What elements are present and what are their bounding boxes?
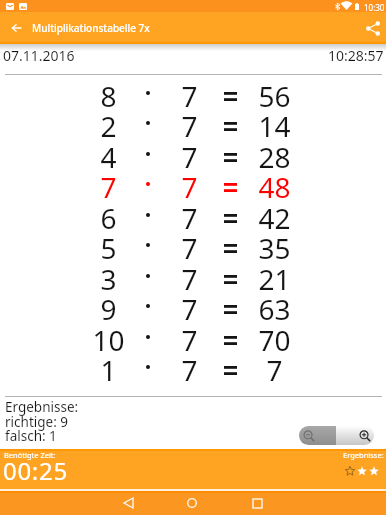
staticText: 14 [258, 107, 291, 137]
staticText: 00:25 [3, 454, 68, 487]
staticText: 35 [258, 229, 291, 259]
button[interactable]: Back [4, 16, 28, 40]
staticText: Multiplikationstabelle 7x [32, 21, 150, 35]
staticText: 6 [100, 199, 117, 229]
button[interactable]: 10 [0, 321, 386, 351]
button[interactable]: 1 [0, 351, 386, 381]
button[interactable]: Zoom out [299, 426, 336, 445]
staticText: 7 [181, 260, 198, 290]
staticText: 7 [181, 351, 198, 381]
staticText: 3 [100, 260, 117, 290]
staticText: 10:30 [364, 2, 385, 13]
staticText: Benötigte Zeit: [4, 450, 56, 460]
button[interactable]: 6 [0, 199, 386, 229]
staticText: 2 [100, 107, 117, 137]
staticText: 7 [181, 77, 198, 107]
button[interactable]: 9 [0, 290, 386, 320]
button[interactable]: Back [108, 491, 148, 515]
staticText: Ergebnisse: [343, 450, 384, 460]
staticText: 7 [181, 168, 198, 198]
staticText: 7 [181, 229, 198, 259]
staticText: 7 [181, 107, 198, 137]
staticText: 21 [258, 260, 291, 290]
staticText: 7 [181, 290, 198, 320]
staticText: 8 [100, 77, 117, 107]
button[interactable]: Recents [237, 491, 277, 515]
staticText: 7 [266, 351, 283, 381]
button[interactable]: Share [360, 15, 386, 41]
staticText: 7 [181, 199, 198, 229]
staticText: 7 [181, 321, 198, 351]
button[interactable]: 8 [0, 77, 386, 107]
staticText: 7 [181, 138, 198, 168]
staticText: 4 [100, 138, 117, 168]
staticText: 1 [100, 351, 117, 381]
staticText: 9 [100, 290, 117, 320]
staticText: Ergebnisse: [5, 398, 79, 416]
staticText: 10 [92, 321, 125, 351]
button[interactable]: 7 [0, 168, 386, 198]
staticText: falsch: 1 [5, 427, 57, 445]
staticText: 10:28:57 [328, 46, 384, 65]
staticText: 28 [258, 138, 291, 168]
staticText: 70 [258, 321, 291, 351]
button[interactable]: Zoom in [336, 426, 374, 445]
staticText: 07.11.2016 [3, 46, 75, 65]
staticText: 63 [258, 290, 291, 320]
staticText: 48 [258, 168, 291, 198]
staticText: 42 [258, 199, 291, 229]
button[interactable]: 2 [0, 107, 386, 137]
button[interactable]: 5 [0, 229, 386, 259]
button[interactable]: Home [172, 491, 212, 515]
staticText: 56 [258, 77, 291, 107]
staticText: 7 [100, 168, 117, 198]
staticText: richtige: 9 [5, 413, 69, 431]
staticText: 5 [100, 229, 117, 259]
button[interactable]: 4 [0, 138, 386, 168]
button[interactable]: 3 [0, 260, 386, 290]
